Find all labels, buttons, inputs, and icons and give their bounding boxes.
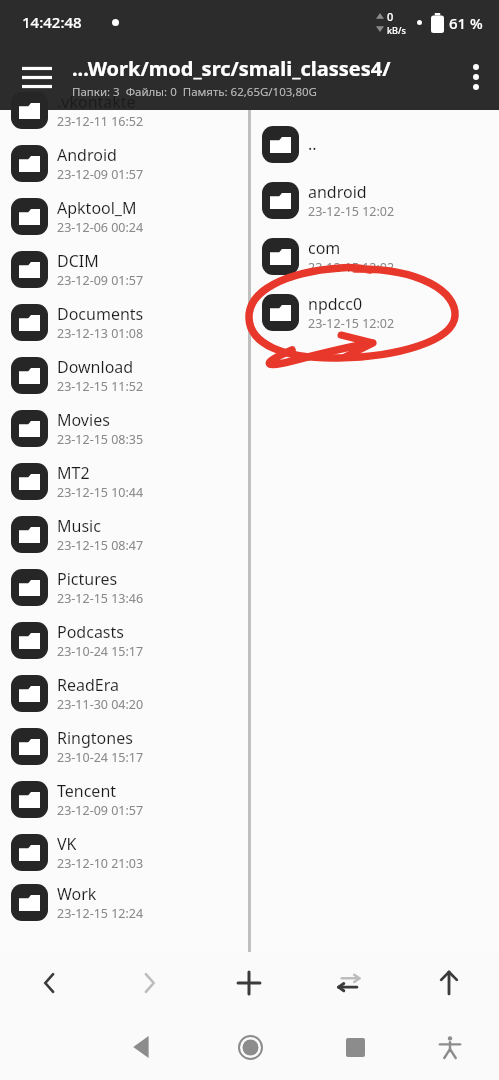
staticText: ReadEra: [57, 674, 119, 696]
button[interactable]: Apktool_M: [0, 190, 248, 243]
staticText: npdcc0: [308, 293, 363, 315]
staticText: DCIM: [57, 250, 99, 272]
button[interactable]: Tencent: [0, 773, 248, 826]
staticText: 23-12-09 01:57: [57, 166, 144, 183]
staticText: 23-12-15 12:02: [308, 203, 395, 220]
staticText: 23-11-30 04:20: [57, 696, 144, 713]
button[interactable]: VK: [0, 826, 248, 879]
button[interactable]: Pictures: [0, 561, 248, 614]
staticText: VK: [57, 833, 77, 855]
button[interactable]: Back: [118, 1014, 166, 1080]
button[interactable]: Android: [0, 137, 248, 190]
staticText: 23-12-15 12:02: [308, 315, 395, 332]
staticText: 0: [387, 9, 394, 24]
button[interactable]: ..: [251, 116, 499, 172]
staticText: 23-12-15 12:24: [57, 905, 144, 922]
staticText: 23-12-15 10:44: [57, 484, 144, 501]
button[interactable]: android: [251, 172, 499, 228]
staticText: ..: [308, 133, 317, 155]
button[interactable]: Recents: [331, 1014, 379, 1080]
staticText: 23-12-13 01:08: [57, 325, 144, 342]
staticText: 61 %: [449, 13, 483, 33]
button[interactable]: Swap panels: [299, 952, 399, 1014]
staticText: 23-12-15 08:35: [57, 431, 144, 448]
staticText: Download: [57, 356, 134, 378]
staticText: Папки: 3 Файлы: 0 Память: 62,65G/103,80G: [72, 84, 317, 100]
button[interactable]: Up: [399, 952, 499, 1014]
button[interactable]: Music: [0, 508, 248, 561]
staticText: Tencent: [57, 780, 117, 802]
staticText: android: [308, 181, 367, 203]
staticText: 23-12-10 21:03: [57, 855, 144, 872]
button[interactable]: Back: [0, 952, 99, 1014]
button[interactable]: Accessibility: [426, 1014, 474, 1080]
staticText: 23-12-15 08:47: [57, 537, 144, 554]
staticText: 23-10-24 15:17: [57, 749, 144, 766]
button[interactable]: More options: [453, 50, 499, 104]
staticText: ...Work/mod_src/smali_classes4/: [72, 55, 391, 82]
staticText: .vkontakte: [57, 91, 136, 113]
staticText: 23-12-09 01:57: [57, 802, 144, 819]
button[interactable]: Download: [0, 349, 248, 402]
staticText: 14:42:48: [22, 12, 82, 32]
staticText: Pictures: [57, 568, 118, 590]
staticText: Apktool_M: [57, 197, 137, 219]
staticText: Work: [57, 883, 97, 905]
staticText: Podcasts: [57, 621, 124, 643]
button[interactable]: Home: [226, 1014, 274, 1080]
button[interactable]: MT2: [0, 455, 248, 508]
button[interactable]: Podcasts: [0, 614, 248, 667]
button[interactable]: Menu: [10, 50, 64, 104]
staticText: Movies: [57, 409, 110, 431]
button[interactable]: DCIM: [0, 243, 248, 296]
staticText: Ringtones: [57, 727, 133, 749]
staticText: MT2: [57, 462, 90, 484]
button[interactable]: New: [199, 952, 299, 1014]
staticText: Music: [57, 515, 101, 537]
staticText: Android: [57, 144, 117, 166]
button[interactable]: .vkontakte: [0, 84, 248, 137]
staticText: 23-10-24 15:17: [57, 643, 144, 660]
staticText: Documents: [57, 303, 144, 325]
staticText: 23-12-15 12:02: [308, 259, 395, 276]
staticText: kB/s: [387, 24, 406, 36]
staticText: 23-12-11 16:52: [57, 113, 144, 130]
button[interactable]: com: [251, 228, 499, 284]
button[interactable]: Documents: [0, 296, 248, 349]
staticText: 23-12-06 00:24: [57, 219, 144, 236]
staticText: 23-12-15 13:46: [57, 590, 144, 607]
button[interactable]: Ringtones: [0, 720, 248, 773]
staticText: 23-12-09 01:57: [57, 272, 144, 289]
button[interactable]: Work: [0, 879, 248, 926]
button[interactable]: npdcc0: [251, 284, 499, 340]
button[interactable]: ReadEra: [0, 667, 248, 720]
staticText: 23-12-15 11:52: [57, 378, 144, 395]
button[interactable]: Forward: [99, 952, 199, 1014]
staticText: com: [308, 237, 341, 259]
button[interactable]: Movies: [0, 402, 248, 455]
